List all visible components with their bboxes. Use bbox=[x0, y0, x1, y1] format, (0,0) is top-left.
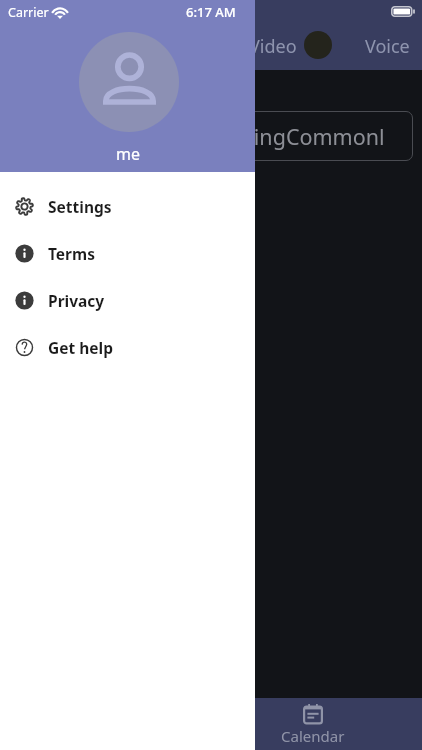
staticText: Privacy bbox=[48, 290, 105, 311]
button[interactable]: Settings bbox=[0, 183, 255, 230]
button[interactable]: BlogPostingCommonl bbox=[154, 111, 413, 161]
staticText: Voice bbox=[365, 34, 410, 59]
staticText: 6:17 AM bbox=[186, 3, 236, 21]
button[interactable]: Get help bbox=[0, 324, 255, 371]
button[interactable]: Record bbox=[304, 31, 332, 59]
button[interactable]: Calendar bbox=[268, 698, 358, 750]
button[interactable]: Privacy bbox=[0, 277, 255, 324]
button[interactable]: Terms bbox=[0, 230, 255, 277]
staticText: Get help bbox=[48, 337, 113, 358]
staticText: Settings bbox=[48, 196, 112, 217]
staticText: Terms bbox=[48, 243, 95, 264]
button[interactable]: Voice bbox=[358, 24, 416, 68]
staticText: me bbox=[116, 143, 140, 165]
staticText: Carrier bbox=[8, 4, 49, 21]
staticText: Video bbox=[249, 34, 297, 59]
staticText: BlogPostingCommonl bbox=[164, 122, 385, 151]
staticText: Calendar bbox=[281, 726, 345, 746]
button[interactable]: Video bbox=[244, 24, 302, 68]
